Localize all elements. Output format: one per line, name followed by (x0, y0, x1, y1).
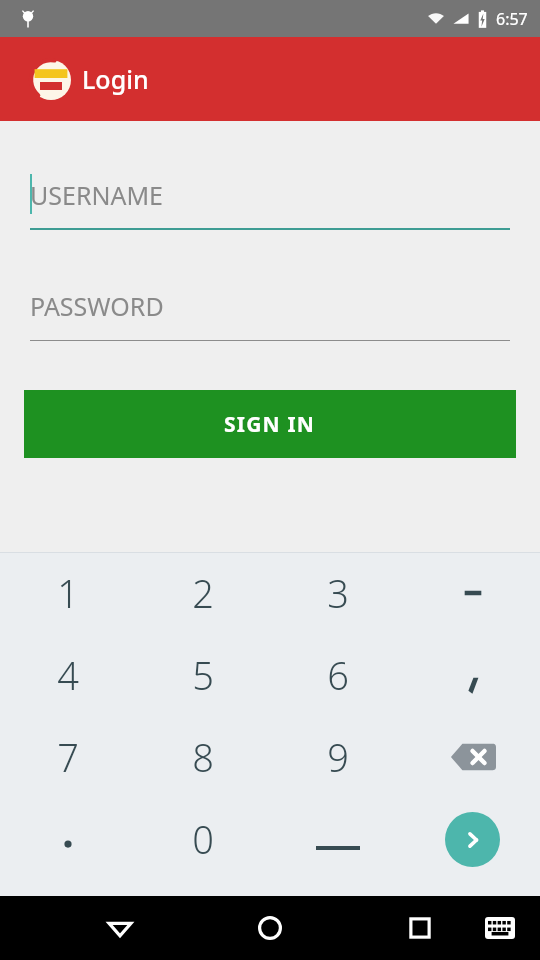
staticText: 9 (327, 731, 349, 783)
button[interactable]: 3 (270, 552, 405, 634)
button[interactable] (405, 552, 540, 634)
button[interactable]: 0 (135, 798, 270, 880)
staticText: Login (82, 62, 149, 96)
button[interactable]: 5 (135, 634, 270, 716)
button[interactable]: 2 (135, 552, 270, 634)
staticText: 6:57 (496, 8, 528, 30)
button[interactable]: 6 (270, 634, 405, 716)
staticText: 4 (57, 649, 79, 701)
button[interactable] (270, 798, 405, 880)
button[interactable]: Switch keyboard (478, 906, 522, 950)
staticText: PASSWORD (30, 289, 164, 323)
button[interactable]: Back (96, 904, 144, 952)
button[interactable] (0, 798, 135, 880)
button[interactable]: 9 (270, 716, 405, 798)
staticText: 1 (57, 567, 79, 619)
staticText: 3 (327, 567, 349, 619)
button[interactable]: SIGN IN (24, 390, 516, 458)
button[interactable] (405, 634, 540, 716)
staticText: 5 (192, 649, 214, 701)
staticText: 7 (57, 731, 79, 783)
button[interactable]: Backspace (405, 716, 540, 798)
button[interactable]: Recents (396, 904, 444, 952)
button[interactable]: USERNAME (30, 168, 510, 230)
button[interactable]: 1 (0, 552, 135, 634)
button[interactable]: 4 (0, 634, 135, 716)
staticText: 6 (327, 649, 349, 701)
button[interactable]: Enter (405, 798, 540, 880)
button[interactable]: 8 (135, 716, 270, 798)
staticText: 8 (192, 731, 214, 783)
staticText: USERNAME (30, 178, 164, 212)
button[interactable]: 7 (0, 716, 135, 798)
button[interactable]: Home (246, 904, 294, 952)
button[interactable]: PASSWORD (30, 279, 510, 341)
staticText: 2 (192, 567, 214, 619)
staticText: SIGN IN (224, 410, 316, 439)
staticText: 0 (192, 813, 214, 865)
